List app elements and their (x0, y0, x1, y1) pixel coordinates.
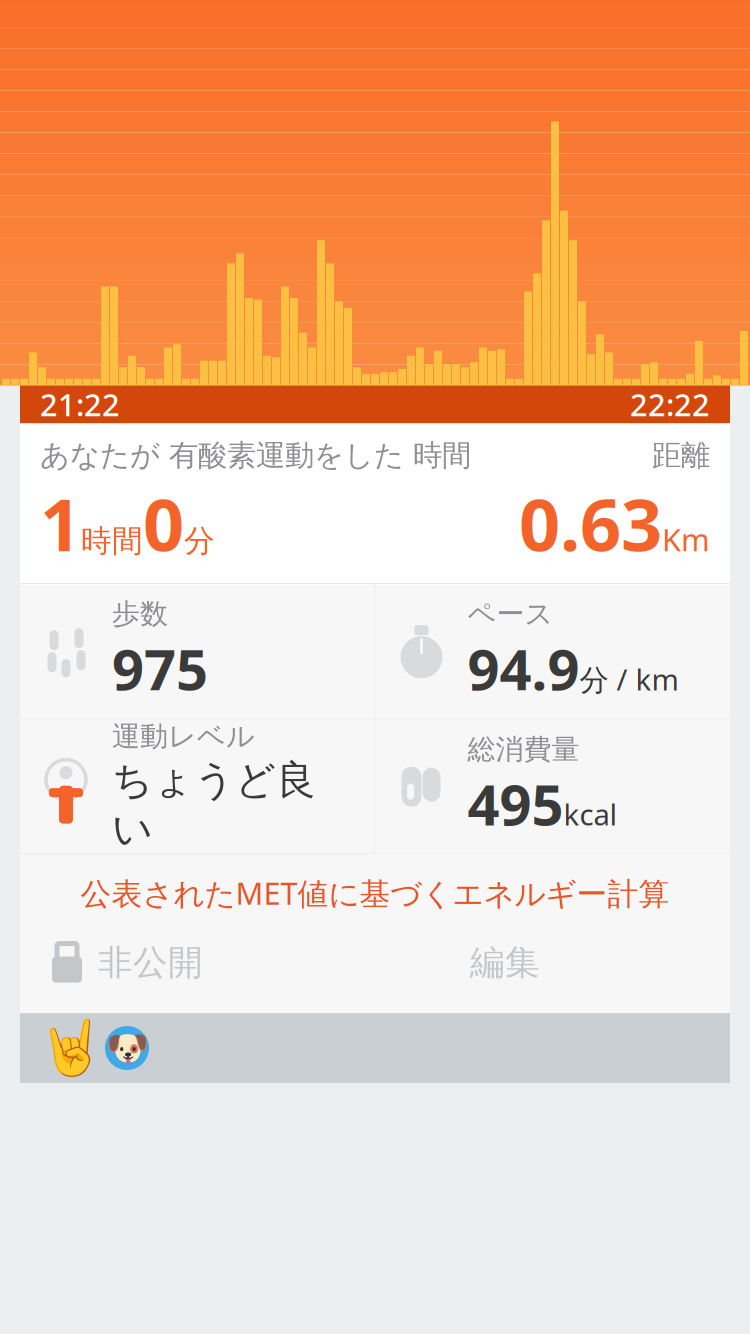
staticText: 非公開 (98, 941, 203, 984)
staticText: 94.9 (467, 631, 579, 706)
staticText: 距離 (652, 437, 710, 473)
button[interactable]: 総消費量 (375, 720, 730, 853)
staticText: 分 / km (579, 660, 678, 699)
button[interactable]: 歩数 (20, 585, 374, 718)
button[interactable]: 非公開 (20, 931, 203, 994)
staticText: 🐶 (105, 1028, 148, 1068)
staticText: あなたが 有酸素運動をした 時間 (40, 437, 471, 473)
staticText: 分 (184, 522, 215, 560)
button[interactable]: 運動レベル (20, 719, 374, 854)
staticText: 0 (143, 475, 184, 571)
staticText: 21:22 (40, 384, 120, 425)
staticText: 公表されたMET値に基づくエネルギー計算 (80, 873, 669, 913)
staticText: kcal (563, 795, 617, 834)
staticText: 🤘 (38, 1018, 104, 1078)
staticText: 1 (40, 475, 81, 571)
button[interactable]: ペース (375, 585, 730, 718)
staticText: 時間 (81, 522, 143, 560)
staticText: 975 (112, 631, 208, 706)
staticText: ペース (467, 597, 553, 631)
button[interactable]: Reaction (48, 1020, 94, 1076)
button[interactable]: Sticker (104, 1020, 150, 1076)
staticText: Km (662, 519, 710, 560)
button[interactable]: 公表されたMET値に基づくエネルギー計算 (20, 855, 730, 931)
staticText: 編集 (470, 941, 540, 984)
staticText: 歩数 (112, 597, 168, 631)
staticText: 22:22 (630, 384, 710, 425)
staticText: 0.63 (519, 475, 662, 571)
staticText: 運動レベル (112, 719, 255, 754)
staticText: ちょうど良い (112, 756, 316, 854)
button[interactable]: 編集 (450, 931, 560, 994)
staticText: 総消費量 (467, 732, 579, 767)
staticText: 495 (467, 767, 563, 841)
